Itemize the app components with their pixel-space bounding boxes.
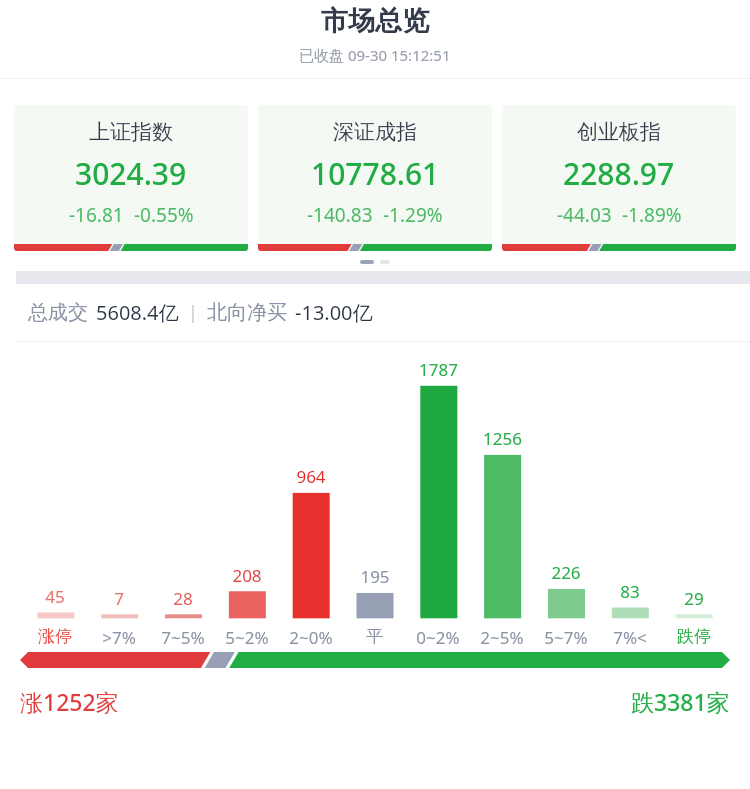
staticText: >7% [102, 626, 136, 649]
staticText: 1256 [483, 427, 522, 450]
staticText: -13.00亿 [295, 299, 373, 326]
staticText: -1.89% [622, 202, 682, 228]
staticText: 0~2% [416, 626, 460, 649]
staticText: 208 [232, 564, 262, 587]
staticText: 跌停 [677, 626, 711, 647]
staticText: 2288.97 [563, 153, 675, 194]
staticText: 平 [366, 626, 383, 647]
staticText: -140.83 [307, 202, 373, 228]
staticText: 964 [296, 465, 326, 488]
staticText: 45 [45, 585, 65, 608]
staticText: 226 [551, 561, 581, 584]
staticText: 1787 [419, 358, 458, 381]
button[interactable]: 总成交 [0, 284, 750, 341]
staticText: -0.55% [134, 202, 194, 228]
staticText: 7 [114, 587, 124, 610]
button[interactable]: 创业板指 [502, 105, 736, 251]
button[interactable]: 深证成指 [258, 105, 492, 251]
staticText: 5608.4亿 [96, 299, 179, 326]
staticText: 5~7% [544, 626, 588, 649]
staticText: 83 [620, 580, 640, 603]
staticText: 上证指数 [89, 119, 173, 145]
staticText: 深证成指 [333, 119, 417, 145]
staticText: 创业板指 [577, 119, 661, 145]
staticText: 28 [173, 587, 193, 610]
staticText: -16.81 [69, 202, 124, 228]
staticText: 3024.39 [75, 153, 187, 194]
staticText: 总成交 [28, 300, 88, 325]
staticText: 2~0% [289, 626, 333, 649]
staticText: 195 [360, 565, 390, 588]
staticText: 2~5% [480, 626, 524, 649]
staticText: 5~2% [225, 626, 269, 649]
staticText: 市场总览 [321, 4, 429, 38]
staticText: 7%< [613, 626, 647, 649]
staticText: 北向净买 [207, 300, 287, 325]
staticText: 10778.61 [311, 153, 440, 194]
staticText: -44.03 [557, 202, 612, 228]
staticText: 涨1252家 [20, 686, 119, 717]
staticText: | [188, 300, 198, 325]
staticText: 已收盘 09-30 15:12:51 [299, 45, 451, 65]
staticText: 29 [684, 587, 704, 610]
staticText: 7~5% [161, 626, 205, 649]
staticText: -1.29% [383, 202, 443, 228]
staticText: 涨停 [38, 626, 72, 647]
staticText: 跌3381家 [631, 686, 730, 717]
button[interactable]: 上证指数 [14, 105, 248, 251]
